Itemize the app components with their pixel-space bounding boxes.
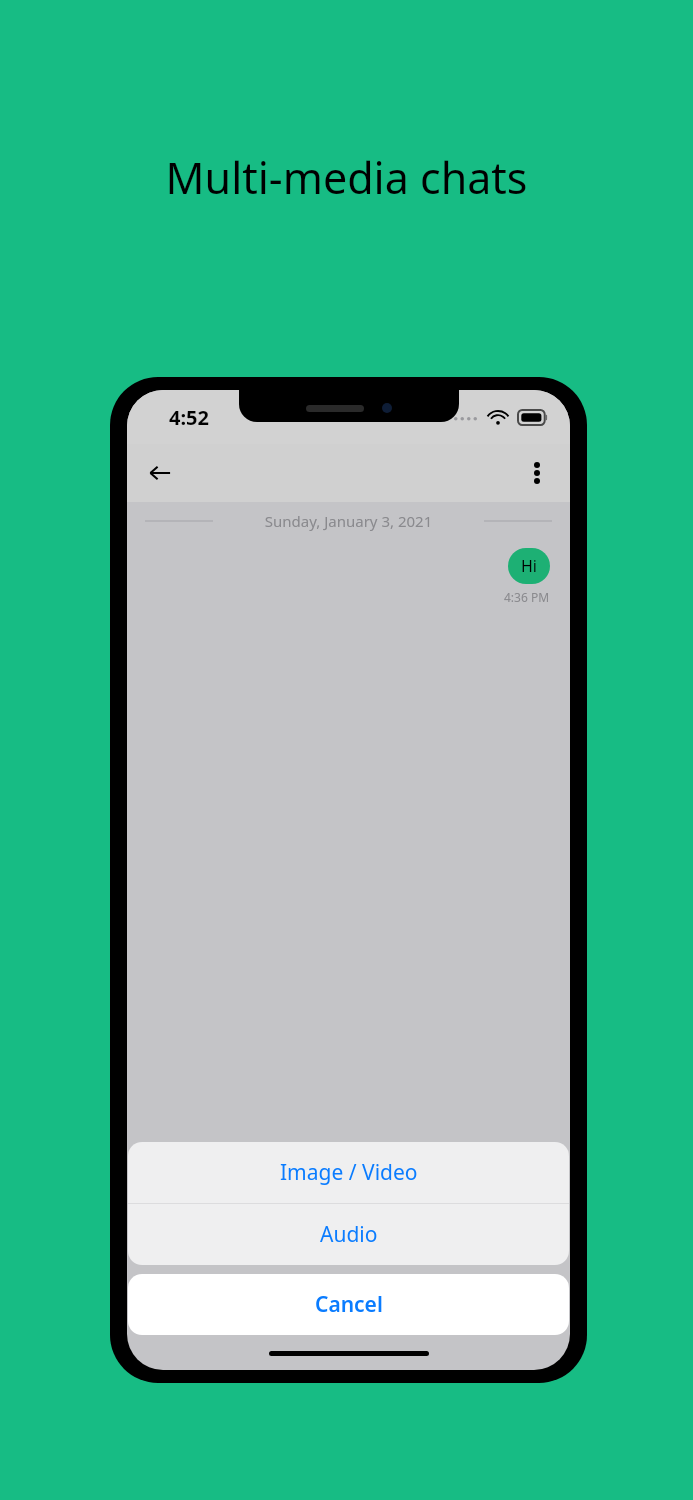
button[interactable]: Back [137,450,183,496]
staticText: 4:36 PM [504,589,550,605]
staticText: Image / Video [280,1158,418,1187]
staticText: Sunday, January 3, 2021 [213,511,484,531]
staticText: Audio [320,1220,378,1249]
staticText: Multi-media chats [0,148,693,207]
button[interactable]: More options [514,450,560,496]
button[interactable]: Cancel [128,1274,569,1335]
button[interactable]: Image / Video [128,1142,569,1203]
button[interactable]: Audio [128,1204,569,1265]
button[interactable]: Hi [508,548,550,584]
staticText: 4:52 [169,404,209,431]
staticText: Cancel [315,1290,383,1319]
staticText: Hi [521,555,537,577]
